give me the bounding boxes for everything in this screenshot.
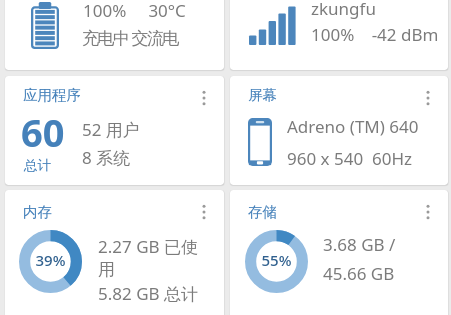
button[interactable]: 应用程序 (5, 76, 224, 185)
staticText: 52 用户 (82, 118, 140, 141)
staticText: 100% -42 dBm (311, 23, 439, 46)
button[interactable]: 屏幕 (230, 76, 448, 185)
staticText: Adreno (TM) 640 (287, 115, 419, 138)
staticText: 2.27 GB 已使用 (98, 235, 202, 280)
staticText: 3.68 GB / (323, 233, 396, 256)
staticText: 存储 (248, 203, 277, 221)
button[interactable]: More options (191, 84, 217, 112)
button[interactable]: zkungfu (230, 0, 448, 70)
button[interactable]: More options (415, 84, 441, 112)
staticText: 应用程序 (23, 86, 81, 104)
staticText: 39% (19, 250, 82, 270)
staticText: 充电中 交流电 (82, 26, 178, 49)
staticText: 55% (245, 250, 308, 270)
staticText: 100% 30°C (83, 0, 186, 22)
staticText: 屏幕 (248, 86, 277, 104)
button[interactable]: More options (191, 198, 217, 226)
button[interactable]: More options (415, 198, 441, 226)
button[interactable]: 100% 30°C (5, 0, 224, 70)
staticText: 8 系统 (82, 146, 131, 169)
staticText: 960 x 540 60Hz (287, 147, 413, 170)
staticText: 5.82 GB 总计 (98, 282, 198, 305)
button[interactable]: 内存 (5, 190, 224, 315)
staticText: zkungfu (311, 0, 376, 20)
staticText: 总计 (24, 157, 51, 174)
staticText: 45.66 GB (323, 262, 395, 285)
staticText: 内存 (23, 203, 52, 221)
staticText: 60 (21, 106, 65, 158)
button[interactable]: 存储 (230, 190, 448, 315)
